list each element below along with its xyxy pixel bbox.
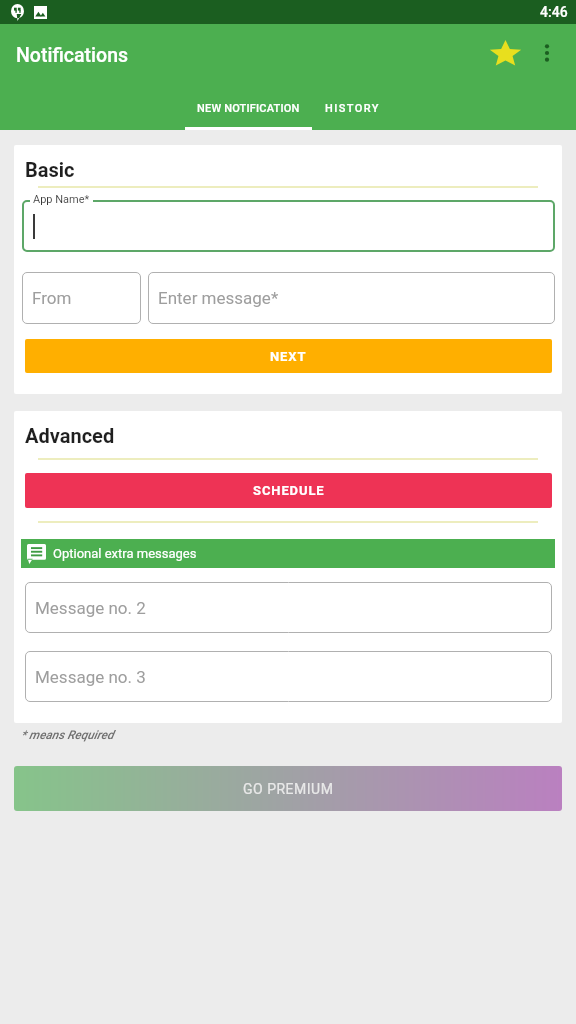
staticText: App Name* (33, 193, 90, 206)
staticText: SCHEDULE (253, 483, 325, 498)
button[interactable]: Favourite (479, 27, 531, 79)
button[interactable]: Message no. 2 (25, 582, 552, 633)
button[interactable] (22, 200, 555, 252)
staticText: * means Required (21, 728, 114, 742)
staticText: GO PREMIUM (243, 781, 334, 797)
button[interactable]: Message no. 3 (25, 651, 552, 702)
staticText: NEW NOTIFICATION (197, 102, 300, 115)
staticText: Notifications (16, 44, 129, 67)
button[interactable]: Optional extra messages (21, 539, 555, 568)
staticText: Enter message* (158, 288, 279, 308)
staticText: Advanced (25, 424, 115, 447)
staticText: NEXT (270, 349, 307, 364)
staticText: Message no. 3 (35, 667, 146, 687)
button[interactable]: Enter message* (148, 272, 555, 324)
staticText: From (32, 288, 72, 308)
button[interactable]: SCHEDULE (25, 473, 552, 508)
staticText: Basic (25, 158, 75, 181)
button[interactable]: More options (523, 29, 571, 77)
button[interactable]: HISTORY (300, 84, 405, 132)
button[interactable]: From (22, 272, 141, 324)
staticText: HISTORY (325, 102, 380, 115)
staticText: Optional extra messages (53, 546, 197, 561)
button[interactable]: NEW NOTIFICATION (185, 84, 312, 132)
staticText: Message no. 2 (35, 598, 146, 618)
staticText: 4:46 (540, 4, 568, 20)
button[interactable]: NEXT (25, 339, 552, 373)
button[interactable]: GO PREMIUM (14, 766, 562, 811)
